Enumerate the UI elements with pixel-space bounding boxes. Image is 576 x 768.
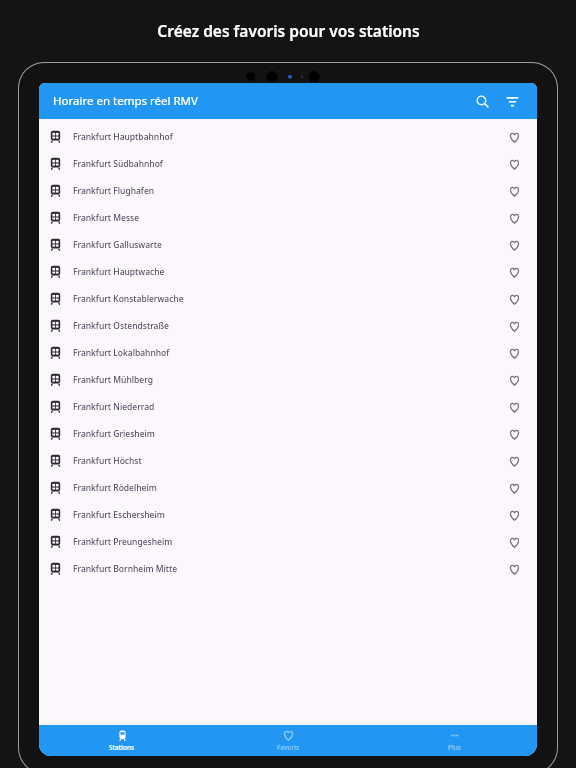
button[interactable]: Frankfurt Konstablerwache — [39, 285, 537, 312]
button[interactable]: Add to favourites — [503, 504, 525, 526]
button[interactable]: Stations — [39, 725, 205, 756]
button[interactable]: Add to favourites — [503, 369, 525, 391]
staticText: Frankfurt Ostendstraße — [73, 320, 169, 332]
staticText: Frankfurt Eschersheim — [73, 509, 165, 521]
button[interactable]: Frankfurt Rödelheim — [39, 474, 537, 501]
staticText: Frankfurt Hauptbahnhof — [73, 131, 173, 143]
staticText: Plus — [448, 743, 461, 752]
button[interactable]: Add to favourites — [503, 180, 525, 202]
staticText: Frankfurt Bornheim Mitte — [73, 563, 178, 575]
button[interactable]: Add to favourites — [503, 207, 525, 229]
staticText: Frankfurt Konstablerwache — [73, 293, 184, 305]
button[interactable]: Add to favourites — [503, 126, 525, 148]
staticText: Frankfurt Messe — [73, 212, 140, 224]
button[interactable]: Frankfurt Hauptwache — [39, 258, 537, 285]
button[interactable]: Add to favourites — [503, 234, 525, 256]
button[interactable]: Add to favourites — [503, 315, 525, 337]
button[interactable]: Add to favourites — [503, 423, 525, 445]
staticText: Frankfurt Niederrad — [73, 401, 155, 413]
button[interactable]: Frankfurt Preungesheim — [39, 528, 537, 555]
button[interactable]: Plus — [371, 725, 537, 756]
staticText: Stations — [109, 743, 135, 752]
button[interactable]: Add to favourites — [503, 558, 525, 580]
button[interactable]: Frankfurt Höchst — [39, 447, 537, 474]
button[interactable]: Add to favourites — [503, 288, 525, 310]
staticText: Frankfurt Mühlberg — [73, 374, 153, 386]
button[interactable]: Frankfurt Mühlberg — [39, 366, 537, 393]
button[interactable]: Add to favourites — [503, 477, 525, 499]
button[interactable]: Favoris — [205, 725, 371, 756]
staticText: Frankfurt Lokalbahnhof — [73, 347, 170, 359]
button[interactable]: Frankfurt Eschersheim — [39, 501, 537, 528]
button[interactable]: Frankfurt Lokalbahnhof — [39, 339, 537, 366]
button[interactable]: Frankfurt Messe — [39, 204, 537, 231]
button[interactable]: Frankfurt Bornheim Mitte — [39, 555, 537, 582]
button[interactable]: Frankfurt Galluswarte — [39, 231, 537, 258]
staticText: Frankfurt Hauptwache — [73, 266, 165, 278]
staticText: Favoris — [277, 743, 300, 752]
staticText: Frankfurt Flughafen — [73, 185, 155, 197]
button[interactable]: Add to favourites — [503, 396, 525, 418]
button[interactable]: Frankfurt Griesheim — [39, 420, 537, 447]
staticText: Frankfurt Preungesheim — [73, 536, 173, 548]
staticText: Horaire en temps réel RMV — [53, 93, 198, 109]
button[interactable]: Add to favourites — [503, 531, 525, 553]
staticText: Frankfurt Höchst — [73, 455, 142, 467]
button[interactable]: Frankfurt Südbahnhof — [39, 150, 537, 177]
button[interactable]: Filter — [499, 88, 525, 114]
button[interactable]: Add to favourites — [503, 261, 525, 283]
button[interactable]: Frankfurt Flughafen — [39, 177, 537, 204]
button[interactable]: Frankfurt Niederrad — [39, 393, 537, 420]
button[interactable]: Add to favourites — [503, 342, 525, 364]
staticText: Frankfurt Rödelheim — [73, 482, 157, 494]
staticText: Créez des favoris pour vos stations — [157, 20, 420, 41]
staticText: Frankfurt Galluswarte — [73, 239, 162, 251]
button[interactable]: Add to favourites — [503, 450, 525, 472]
button[interactable]: Frankfurt Hauptbahnhof — [39, 123, 537, 150]
staticText: Frankfurt Südbahnhof — [73, 158, 163, 170]
button[interactable]: Search — [469, 88, 495, 114]
button[interactable]: Frankfurt Ostendstraße — [39, 312, 537, 339]
button[interactable]: Add to favourites — [503, 153, 525, 175]
staticText: Frankfurt Griesheim — [73, 428, 155, 440]
